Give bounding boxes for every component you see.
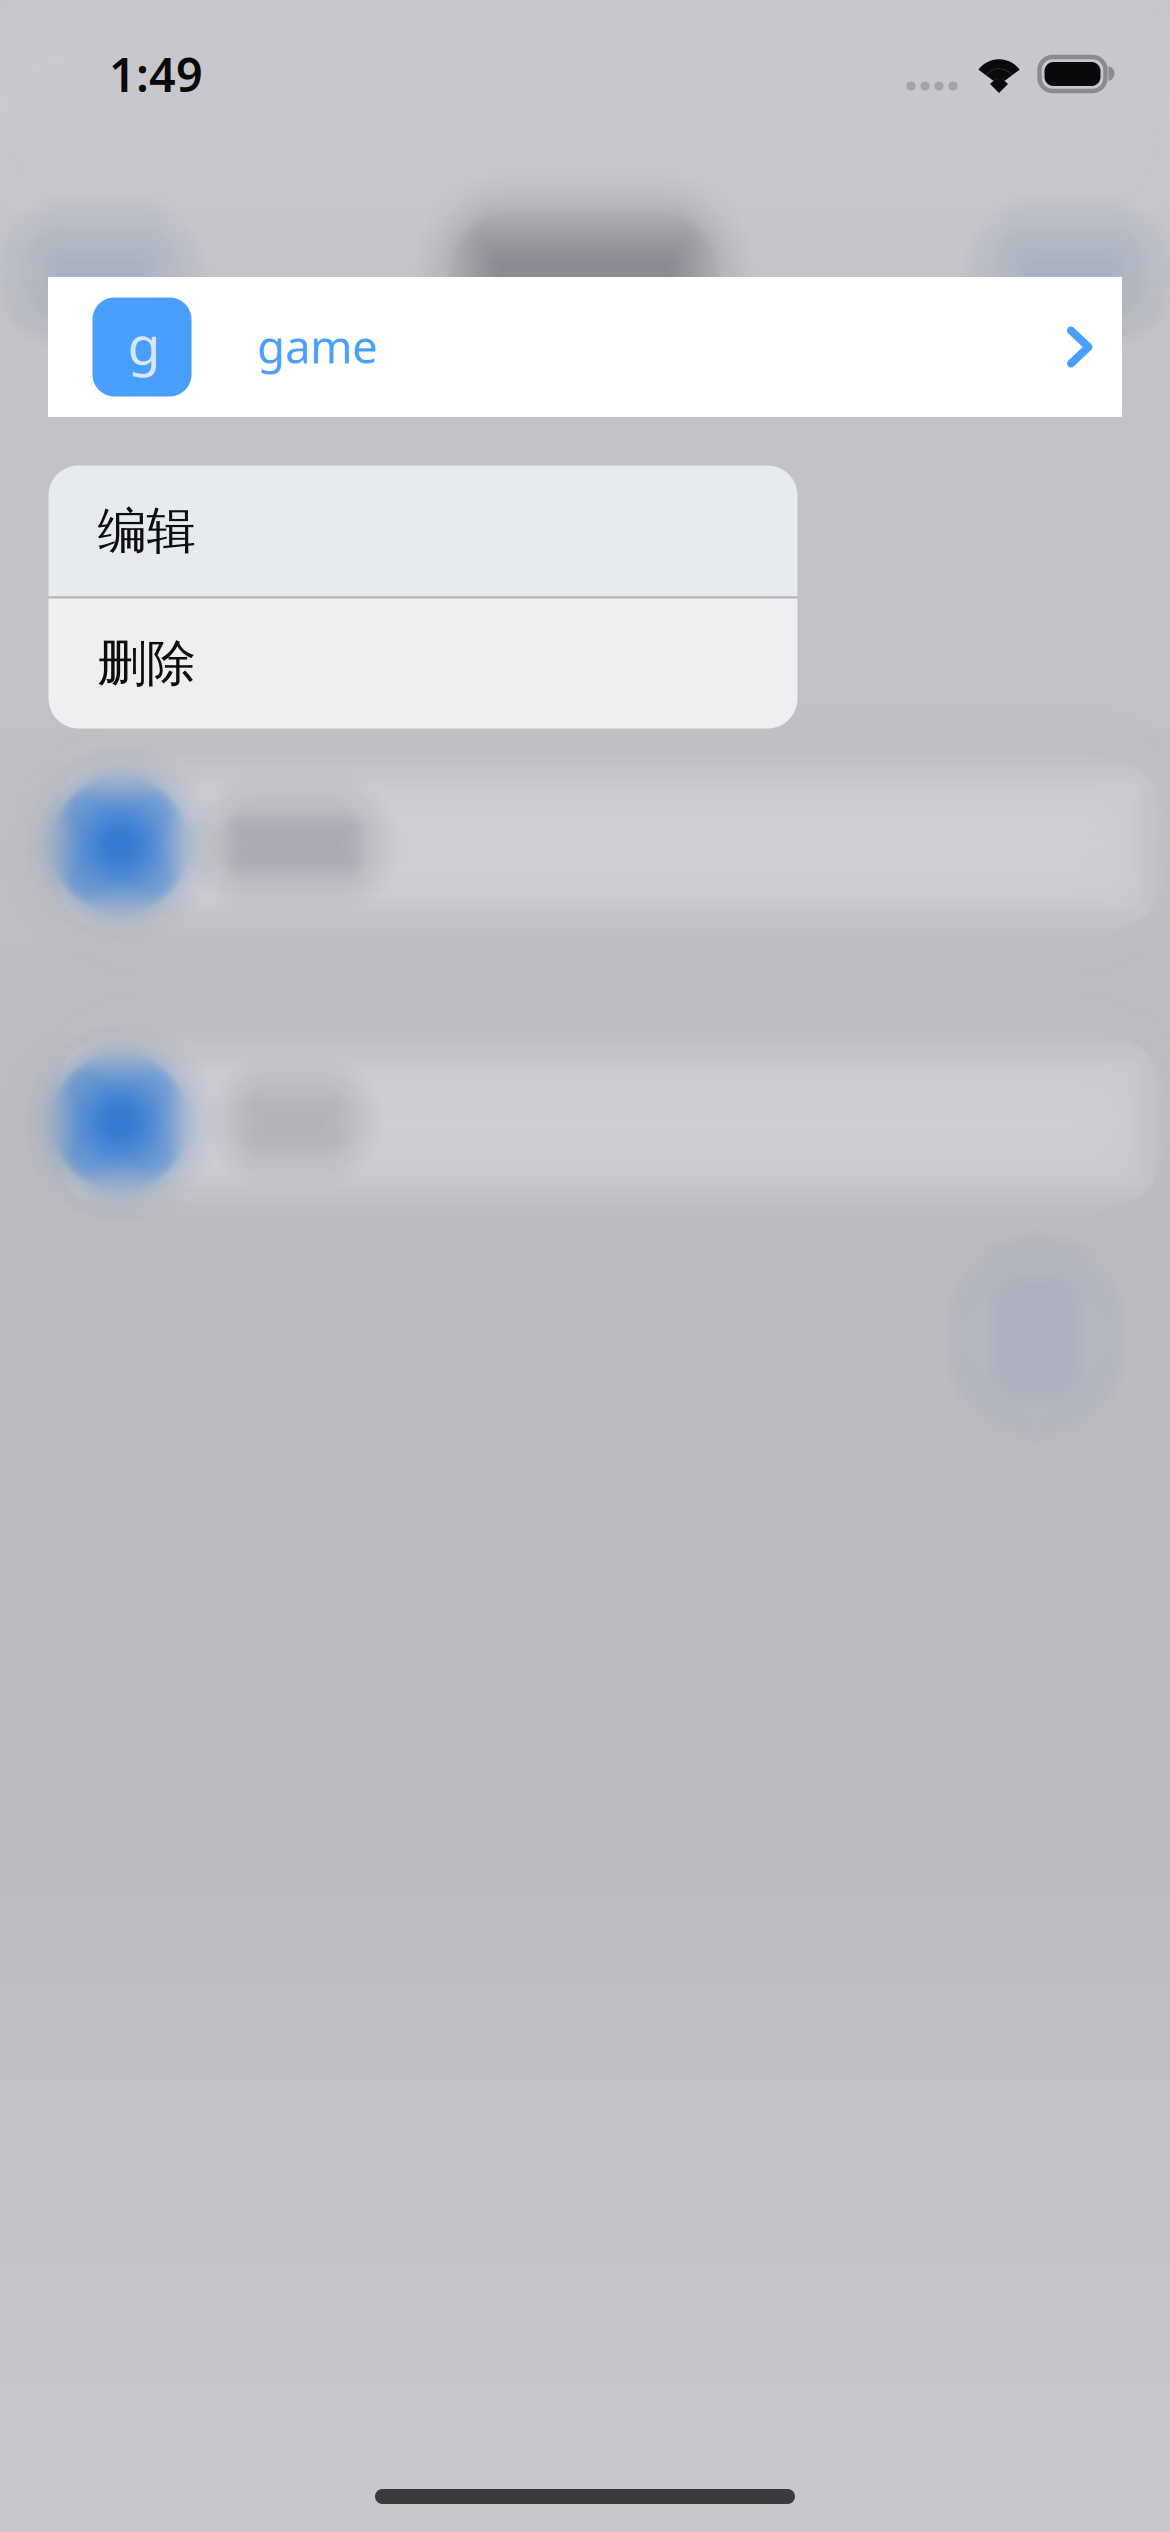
staticText: g [127,309,160,379]
button[interactable]: 删除 [48,598,797,728]
staticText: 1:49 [109,43,203,105]
staticText: 删除 [97,633,195,694]
staticText: game [257,316,378,376]
button[interactable]: g [48,277,1122,417]
button[interactable]: 编辑 [48,465,797,596]
staticText: 编辑 [97,501,195,561]
